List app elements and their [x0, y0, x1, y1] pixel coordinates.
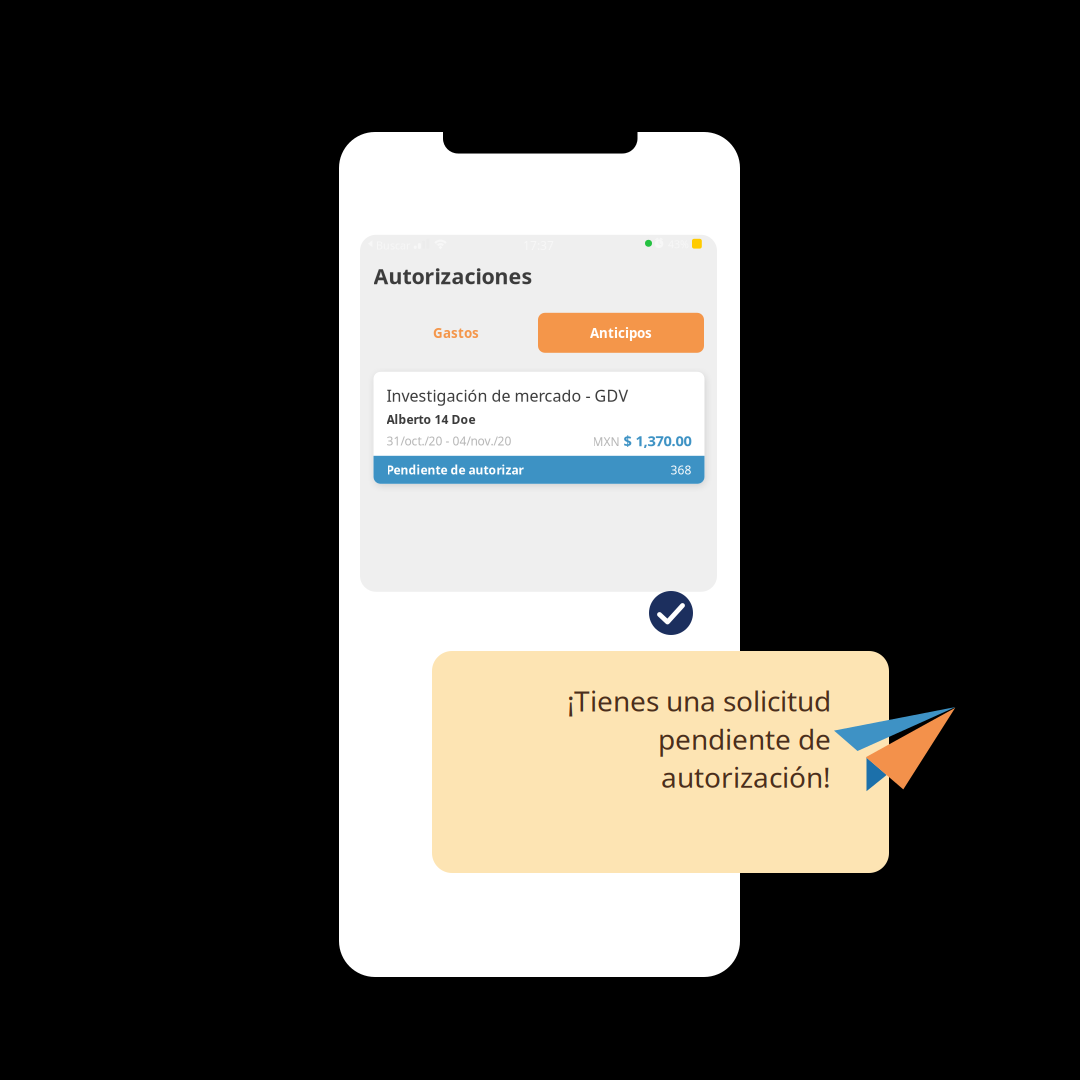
staticText: Investigación de mercado - GDV	[386, 385, 628, 406]
staticText: MXN	[592, 434, 619, 449]
staticText: ¡Tienes una solicitud	[567, 682, 831, 719]
staticText: 368	[670, 462, 691, 478]
button[interactable]: Solicitud autorizada	[649, 591, 693, 635]
staticText: autorización!	[661, 758, 831, 796]
button[interactable]: Pendiente de autorizar	[373, 372, 704, 484]
staticText: 31/oct./20 - 04/nov./20	[386, 433, 511, 449]
staticText: Anticipos	[590, 324, 652, 342]
button[interactable]: Anticipos	[538, 313, 704, 353]
staticText: $ 1,370.00	[623, 431, 691, 450]
staticText: Autorizaciones	[373, 262, 532, 290]
staticText: pendiente de	[658, 720, 831, 757]
button[interactable]: Gastos	[373, 313, 539, 353]
staticText: Pendiente de autorizar	[386, 462, 523, 478]
staticText: Alberto 14 Doe	[386, 411, 475, 427]
staticText: Gastos	[433, 324, 479, 342]
